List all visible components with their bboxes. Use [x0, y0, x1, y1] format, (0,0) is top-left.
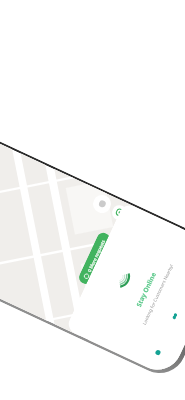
- button[interactable]: My location: [109, 203, 129, 223]
- button[interactable]: Map layers: [90, 192, 114, 216]
- staticText: 0 More requests: [86, 239, 106, 273]
- button[interactable]: Home: [147, 342, 169, 363]
- staticText: Looking for Customers Nearby!: [141, 263, 174, 326]
- button[interactable]: 0 More requests: [77, 231, 112, 286]
- button[interactable]: Deliveries: [164, 306, 185, 327]
- staticText: Stay Online: [134, 270, 158, 308]
